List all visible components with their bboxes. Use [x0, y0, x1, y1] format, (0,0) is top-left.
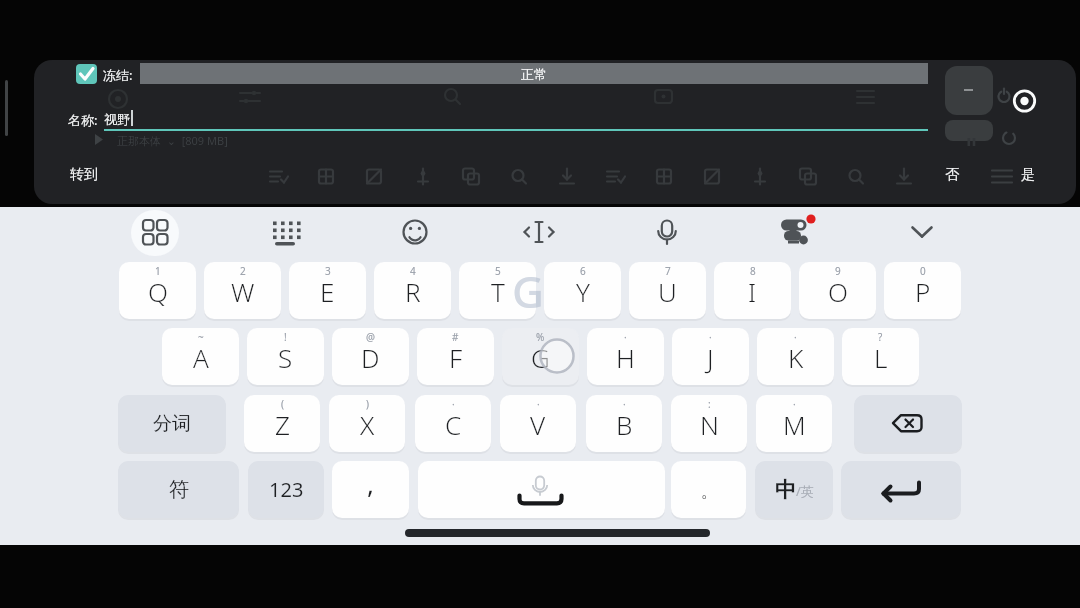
staticText: 5	[495, 264, 501, 278]
staticText: U	[658, 274, 677, 309]
staticText: 123	[269, 476, 304, 503]
button[interactable]	[854, 395, 962, 452]
staticText: 7	[665, 264, 671, 278]
button[interactable]: %	[502, 328, 579, 385]
staticText: D	[361, 340, 380, 375]
button[interactable]: 4	[374, 262, 451, 319]
staticText: ·	[794, 330, 797, 344]
staticText: #	[452, 330, 459, 344]
button[interactable]: 。	[671, 461, 746, 518]
button[interactable]	[841, 461, 961, 518]
button[interactable]	[418, 461, 665, 518]
button[interactable]	[76, 64, 97, 84]
staticText: 3	[325, 264, 331, 278]
staticText: R	[405, 274, 421, 309]
staticText: :	[708, 397, 711, 411]
staticText: V	[530, 407, 546, 442]
staticText: B	[616, 407, 633, 442]
staticText: ·	[793, 397, 796, 411]
button[interactable]: 分词	[118, 395, 226, 452]
staticText: ·	[709, 330, 712, 344]
staticText: 0	[920, 264, 926, 278]
staticText: ?	[878, 330, 883, 344]
staticText: S	[278, 340, 293, 375]
staticText: %	[536, 330, 545, 344]
staticText: L	[874, 340, 888, 375]
button[interactable]: @	[332, 328, 409, 385]
staticText: H	[616, 340, 635, 375]
button[interactable]: !	[247, 328, 324, 385]
staticText: 9	[835, 264, 841, 278]
staticText: 视野	[104, 111, 130, 127]
button[interactable]: 9	[799, 262, 876, 319]
staticText: 正那本体 ⌄ [809 MB]	[117, 133, 228, 148]
staticText: Y	[576, 274, 590, 309]
staticText: 4	[410, 264, 416, 278]
staticText: 否	[945, 166, 959, 184]
button[interactable]: ·	[757, 328, 834, 385]
button[interactable]: ·	[672, 328, 749, 385]
staticText: 是	[1021, 166, 1035, 184]
staticText: F	[449, 340, 463, 375]
staticText: 。	[701, 481, 718, 502]
button[interactable]: 123	[248, 461, 324, 518]
staticText: G	[512, 261, 544, 321]
button[interactable]: 8	[714, 262, 791, 319]
button[interactable]: 7	[629, 262, 706, 319]
button[interactable]: )	[329, 395, 405, 452]
button[interactable]: ~	[162, 328, 239, 385]
staticText: ·	[452, 397, 455, 411]
button[interactable]: ,	[332, 461, 409, 518]
staticText: I	[748, 274, 757, 309]
staticText: @	[366, 330, 375, 344]
staticText: /英	[796, 482, 814, 500]
button[interactable]: (	[244, 395, 320, 452]
staticText: N	[700, 407, 719, 442]
staticText: C	[445, 407, 462, 442]
button[interactable]: 是	[1012, 162, 1044, 188]
staticText: 1	[155, 264, 161, 278]
staticText: 分词	[153, 412, 191, 436]
staticText: 转到	[70, 166, 98, 184]
button[interactable]: ·	[756, 395, 832, 452]
button[interactable]: ·	[415, 395, 491, 452]
staticText: ·	[537, 397, 540, 411]
staticText: 8	[750, 264, 756, 278]
staticText: M	[783, 407, 806, 442]
staticText: )	[366, 397, 369, 411]
staticText: A	[193, 340, 209, 375]
button[interactable]: 转到	[60, 162, 108, 188]
staticText: 2	[240, 264, 246, 278]
staticText: G	[531, 340, 550, 375]
staticText: T	[491, 274, 505, 309]
button[interactable]: 0	[884, 262, 961, 319]
staticText: 符	[169, 477, 189, 502]
button[interactable]: :	[671, 395, 747, 452]
staticText: !	[284, 330, 287, 344]
button[interactable]: 3	[289, 262, 366, 319]
staticText: P	[915, 274, 931, 309]
staticText: J	[707, 340, 714, 375]
button[interactable]: 1	[119, 262, 196, 319]
staticText: 名称:	[68, 111, 98, 129]
staticText: 中	[775, 477, 796, 503]
staticText: O	[828, 274, 848, 309]
button[interactable]: 否	[936, 162, 968, 188]
button[interactable]: ·	[586, 395, 662, 452]
button[interactable]: 正常	[140, 63, 928, 84]
staticText: ,	[367, 466, 374, 501]
button[interactable]: ·	[587, 328, 664, 385]
button[interactable]: ?	[842, 328, 919, 385]
button[interactable]: 符	[118, 461, 239, 518]
button[interactable]: #	[417, 328, 494, 385]
staticText: (	[281, 397, 284, 411]
staticText: W	[231, 274, 255, 309]
button[interactable]: ·	[500, 395, 576, 452]
button[interactable]: 6	[544, 262, 621, 319]
button[interactable]: 2	[204, 262, 281, 319]
staticText: 冻结:	[103, 66, 133, 84]
button[interactable]: 5	[459, 262, 536, 319]
button[interactable]: 中	[755, 461, 833, 518]
button[interactable]	[945, 66, 993, 115]
staticText: ·	[624, 330, 627, 344]
